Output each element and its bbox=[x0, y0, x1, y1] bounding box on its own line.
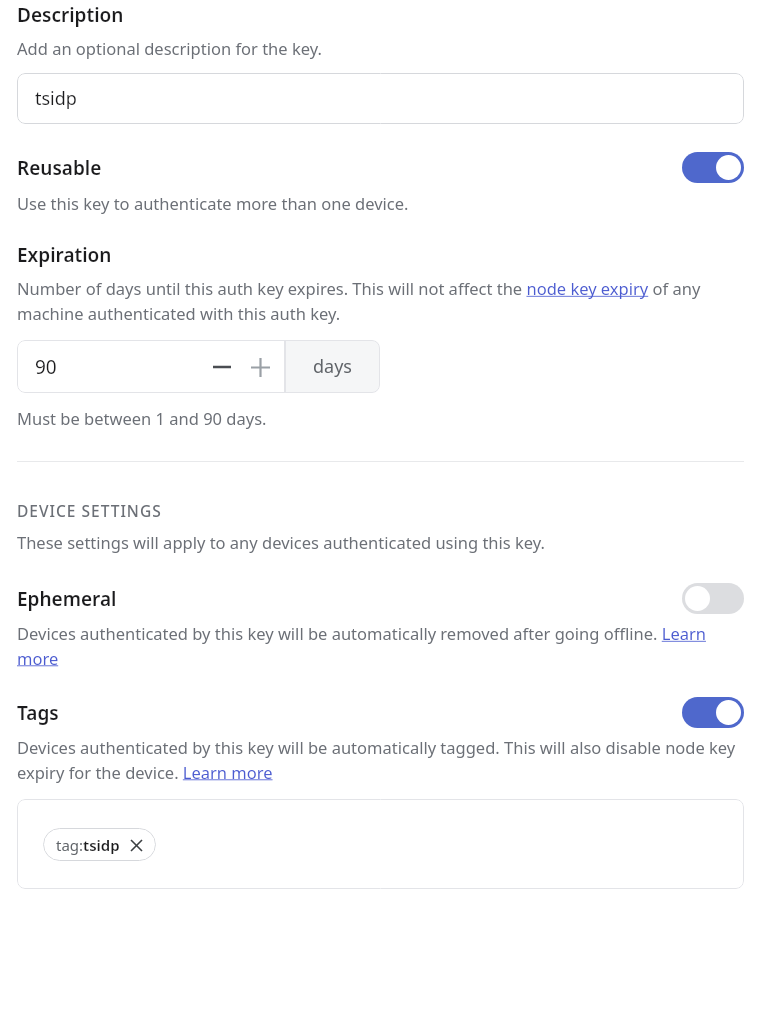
staticText: tsidp bbox=[35, 86, 77, 111]
staticText: Devices authenticated by this key will b… bbox=[17, 736, 744, 783]
staticText: Devices authenticated by this key will b… bbox=[17, 622, 744, 669]
button[interactable]: tsidp bbox=[17, 73, 744, 124]
staticText: These settings will apply to any devices… bbox=[17, 531, 545, 553]
staticText: DEVICE SETTINGS bbox=[17, 500, 162, 521]
staticText: Must be between 1 and 90 days. bbox=[17, 407, 267, 429]
button[interactable]: Ephemeral bbox=[682, 583, 744, 614]
staticText: Ephemeral bbox=[17, 586, 682, 612]
staticText: 90 bbox=[35, 354, 57, 380]
staticText: Reusable bbox=[17, 155, 682, 181]
staticText: Expiration bbox=[17, 242, 112, 268]
staticText: Description bbox=[17, 2, 124, 28]
staticText: Use this key to authenticate more than o… bbox=[17, 192, 409, 214]
staticText: Tags bbox=[17, 700, 682, 726]
staticText: tag:tsidp bbox=[56, 835, 120, 855]
button[interactable]: Tags bbox=[682, 697, 744, 728]
button[interactable]: Increase days bbox=[247, 354, 273, 380]
button[interactable]: Remove tag bbox=[129, 838, 143, 852]
button[interactable]: Decrease days bbox=[209, 354, 235, 380]
staticText: Add an optional description for the key. bbox=[17, 37, 322, 59]
button[interactable]: tag:tsidp bbox=[43, 828, 156, 861]
staticText: Number of days until this auth key expir… bbox=[17, 277, 744, 324]
button[interactable]: Reusable bbox=[682, 152, 744, 183]
staticText: days bbox=[313, 354, 352, 379]
